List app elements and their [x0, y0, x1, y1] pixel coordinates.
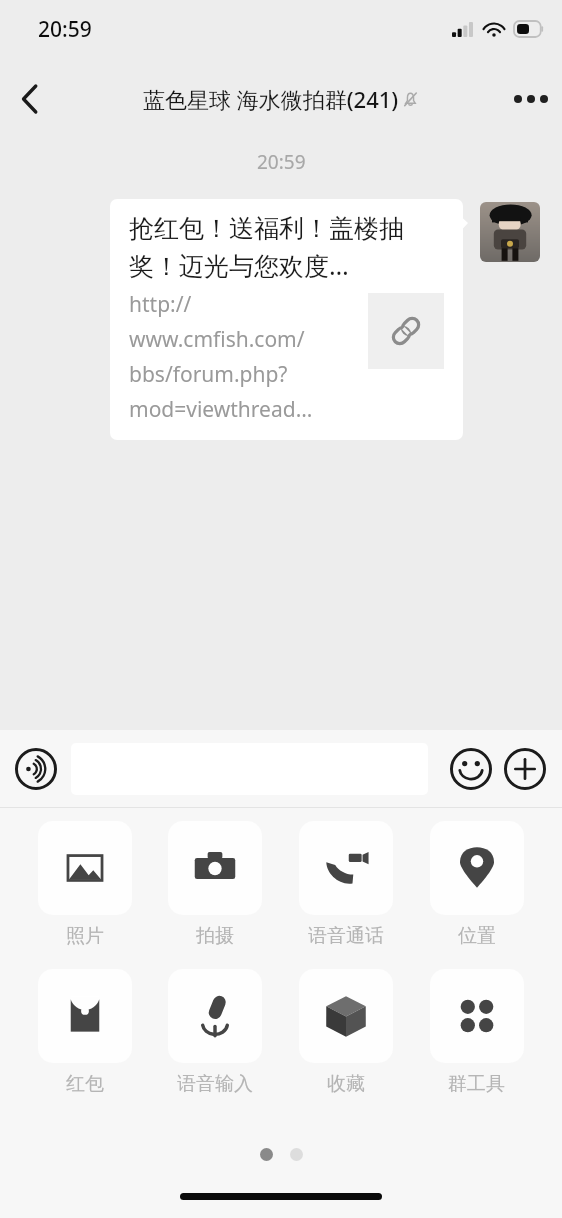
staticText: 20:59 — [38, 15, 92, 44]
staticText: 收藏 — [327, 1072, 365, 1096]
staticText: 抢红包！送福利！盖楼抽奖！迈光与您欢度… — [129, 213, 444, 282]
button[interactable]: 语音输入 — [150, 969, 280, 1096]
button[interactable]: 语音通话 — [280, 821, 411, 948]
button[interactable]: More options — [500, 68, 562, 130]
staticText: 语音通话 — [308, 924, 384, 948]
staticText: 红包 — [66, 1072, 104, 1096]
staticText: 拍摄 — [196, 924, 234, 948]
button[interactable]: Back — [0, 70, 58, 128]
button[interactable]: 照片 — [20, 821, 150, 948]
button[interactable]: 抢红包！送福利！盖楼抽奖！迈光与您欢度… — [110, 199, 463, 440]
staticText: 位置 — [458, 924, 496, 948]
staticText: 群工具 — [448, 1072, 505, 1096]
staticText: 蓝色星球 海水微拍群(241) — [143, 84, 399, 114]
button[interactable]: Emoji — [444, 742, 498, 796]
button[interactable]: 收藏 — [280, 969, 411, 1096]
staticText: 语音输入 — [177, 1072, 253, 1096]
button[interactable]: 拍摄 — [150, 821, 280, 948]
button[interactable]: 群工具 — [411, 969, 542, 1096]
staticText: http://www.cmfish.com/bbs/forum.php?mod=… — [129, 290, 339, 424]
button[interactable]: 红包 — [20, 969, 150, 1096]
button[interactable]: More functions — [498, 742, 552, 796]
staticText: 照片 — [66, 924, 104, 948]
button[interactable]: Voice message — [8, 741, 64, 797]
button[interactable]: Avatar — [480, 202, 540, 262]
button[interactable]: 位置 — [411, 821, 542, 948]
staticText: 20:59 — [257, 149, 306, 175]
